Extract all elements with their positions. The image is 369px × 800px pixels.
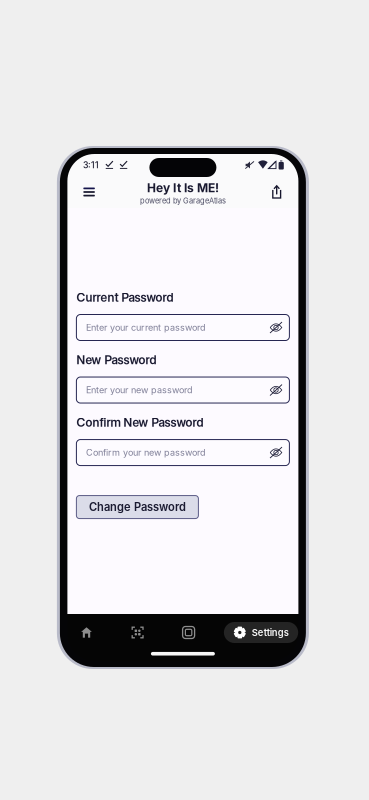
button[interactable]: Enter your new password (76, 377, 289, 403)
staticText: Current Password (76, 290, 173, 304)
staticText: New Password (76, 352, 156, 367)
staticText: powered by GarageAtlas (140, 196, 226, 205)
staticText: Enter your new password (86, 385, 193, 396)
staticText: Change Password (89, 500, 186, 514)
staticText: Confirm your new password (86, 447, 206, 458)
staticText: Enter your current password (86, 322, 206, 333)
button[interactable]: Home (67, 616, 106, 648)
button[interactable]: Wallet (170, 616, 208, 648)
button[interactable]: Share (264, 180, 290, 204)
button[interactable]: Change Password (76, 496, 198, 519)
staticText: Confirm New Password (76, 415, 203, 429)
button[interactable]: Menu (76, 180, 102, 204)
staticText: Settings (252, 627, 289, 638)
staticText: Hey It Is ME! (147, 181, 219, 195)
staticText: 3:11 (83, 160, 99, 170)
button[interactable]: Settings (224, 622, 298, 643)
button[interactable]: Enter your current password (76, 314, 289, 340)
button[interactable]: Scan (119, 616, 157, 648)
button[interactable]: Confirm your new password (76, 440, 289, 466)
